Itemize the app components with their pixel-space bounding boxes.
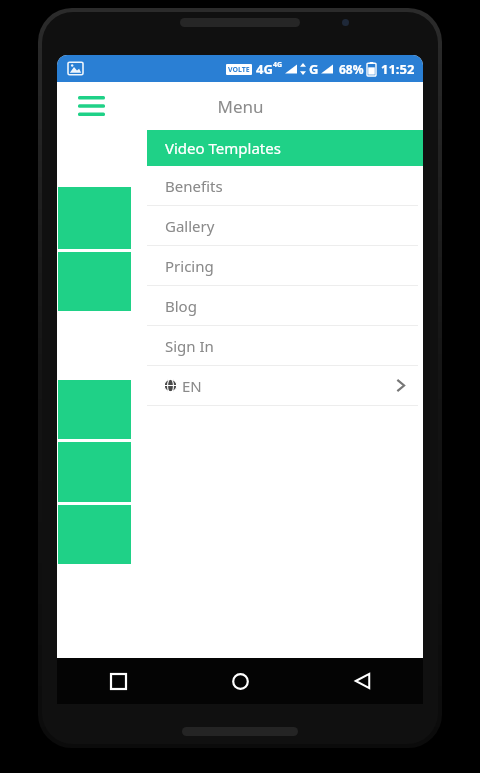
staticText: 68% <box>339 61 364 77</box>
button[interactable]: Open navigation menu <box>73 88 109 124</box>
staticText: 11:52 <box>381 60 415 78</box>
button[interactable]: Benefits <box>147 166 423 206</box>
staticText: Video Templates <box>165 138 281 158</box>
button[interactable]: Sign In <box>147 326 423 366</box>
staticText: VOLTE <box>228 65 250 75</box>
staticText: EN <box>182 376 202 396</box>
staticText: Sign In <box>165 336 214 356</box>
staticText: G <box>309 60 319 78</box>
button[interactable]: Recent apps <box>57 658 179 704</box>
button[interactable]: EN <box>147 366 423 406</box>
button[interactable]: Home <box>179 658 301 704</box>
button[interactable]: Pricing <box>147 246 423 286</box>
staticText: Benefits <box>165 176 223 196</box>
button[interactable]: Blog <box>147 286 423 326</box>
button[interactable]: Video Templates <box>147 130 423 166</box>
staticText: Menu <box>217 95 264 118</box>
staticText: Gallery <box>165 216 215 236</box>
staticText: 4G <box>256 60 273 78</box>
staticText: Blog <box>165 296 197 316</box>
staticText: 4G <box>273 60 283 70</box>
staticText: Pricing <box>165 256 214 276</box>
button[interactable]: Gallery <box>147 206 423 246</box>
button[interactable]: Back <box>301 658 423 704</box>
